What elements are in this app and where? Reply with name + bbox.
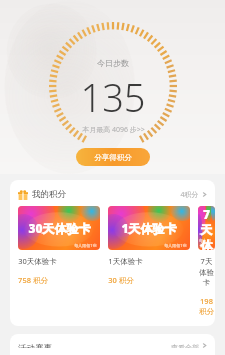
staticText: 7天体验卡 [198,256,215,287]
staticText: 每人限领1张 [74,243,97,248]
button[interactable]: 分享得积分 [76,148,150,166]
staticText: 30天体验卡 [18,256,57,266]
staticText: 本月最高 4096 步>> [82,125,145,135]
button[interactable]: 1天体验卡 [108,206,190,285]
staticText: 查看全部 [171,343,199,348]
staticText: 135 [80,71,146,123]
staticText: 1天体验卡 [121,220,177,236]
staticText: 4积分 [180,190,199,200]
staticText: 每人限领1张 [198,238,212,248]
staticText: 1天体验卡 [108,256,143,266]
staticText: 今日步数 [97,58,129,68]
button[interactable]: 我的积分 [18,189,207,200]
staticText: 活动赛事 [18,343,52,348]
staticText: 我的积分 [32,189,66,200]
button[interactable]: 30天体验卡 [18,206,100,285]
button[interactable]: 7天体验卡 [198,206,215,316]
staticText: 分享得积分 [94,153,132,162]
staticText: 7天体验卡 [198,206,215,250]
button[interactable]: 活动赛事 [18,343,207,348]
staticText: 30 积分 [108,275,134,285]
staticText: 30天体验卡 [28,220,91,236]
staticText: 758 积分 [18,275,48,285]
staticText: 每人限领1张 [164,243,187,248]
staticText: 198 积分 [198,296,215,316]
